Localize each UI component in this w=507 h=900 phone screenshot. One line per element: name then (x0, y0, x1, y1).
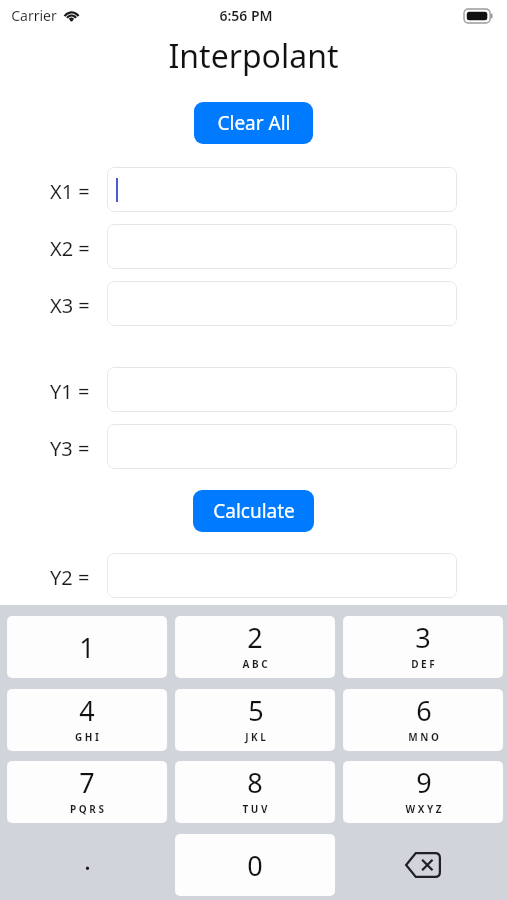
button[interactable]: 7 (7, 761, 167, 823)
staticText: G H I (75, 730, 99, 744)
staticText: 6:56 PM (219, 6, 273, 25)
staticText: Interpolant (0, 34, 507, 78)
staticText: Y2 = (50, 564, 105, 591)
staticText: 5 (248, 692, 264, 729)
staticText: 6 (416, 692, 432, 729)
staticText: X3 = (50, 292, 105, 319)
button[interactable] (107, 167, 457, 212)
staticText: Calculate (213, 498, 295, 524)
button[interactable]: 0 (175, 834, 335, 896)
staticText: W X Y Z (405, 802, 442, 816)
button[interactable] (107, 424, 457, 469)
button[interactable] (107, 367, 457, 412)
button[interactable] (107, 224, 457, 269)
staticText: 2 (247, 619, 263, 656)
staticText: 3 (415, 619, 431, 656)
staticText: Y3 = (50, 435, 105, 462)
staticText: Y1 = (50, 378, 105, 405)
button[interactable]: 1 (7, 616, 167, 678)
staticText: M N O (408, 730, 439, 744)
staticText: X1 = (50, 178, 105, 205)
staticText: T U V (242, 802, 268, 816)
button[interactable]: 8 (175, 761, 335, 823)
button[interactable]: 2 (175, 616, 335, 678)
staticText: 1 (79, 629, 95, 666)
other: Wi-Fi (63, 9, 80, 22)
staticText: J K L (245, 730, 266, 744)
staticText: . (84, 842, 91, 877)
button[interactable]: 5 (175, 689, 335, 751)
button[interactable]: 6 (343, 689, 503, 751)
button[interactable]: Delete (343, 834, 503, 896)
staticText: D E F (411, 657, 435, 671)
button[interactable]: Clear All (194, 102, 313, 144)
button[interactable]: 9 (343, 761, 503, 823)
staticText: 8 (247, 764, 263, 801)
button[interactable]: Calculate (193, 490, 314, 532)
staticText: 7 (79, 764, 95, 801)
button[interactable]: . (7, 834, 167, 896)
staticText: 0 (247, 847, 263, 884)
staticText: A B C (242, 657, 268, 671)
button[interactable]: 3 (343, 616, 503, 678)
button[interactable]: 4 (7, 689, 167, 751)
staticText: Clear All (217, 110, 291, 136)
button[interactable] (107, 553, 457, 598)
button[interactable] (107, 281, 457, 326)
staticText: 4 (79, 692, 95, 729)
staticText: P Q R S (70, 802, 104, 816)
staticText: 9 (416, 764, 432, 801)
other: Battery (464, 9, 493, 23)
staticText: X2 = (50, 235, 105, 262)
staticText: Carrier (11, 6, 57, 25)
